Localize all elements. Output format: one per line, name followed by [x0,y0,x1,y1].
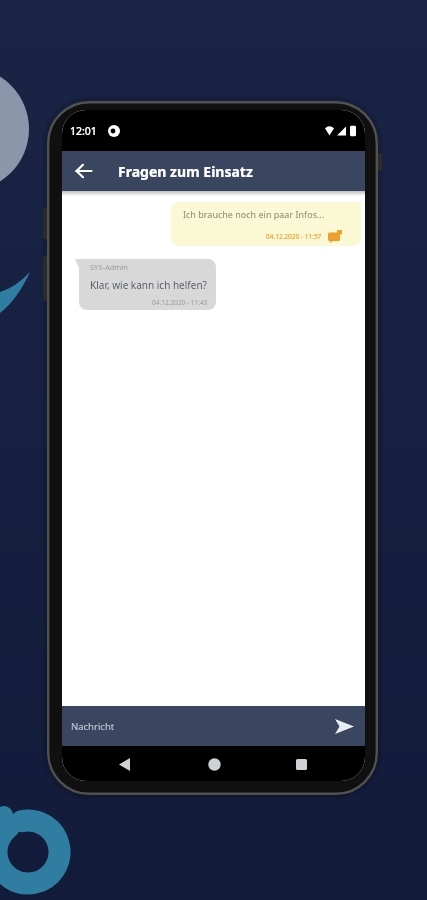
button[interactable] [287,750,315,778]
staticText: 12:01 [70,124,97,138]
staticText: SYS-Admin [90,262,128,272]
button[interactable] [110,750,138,778]
button[interactable]: SYS-Admin [79,259,216,310]
staticText: Ich brauche noch ein paar Infos... [183,208,325,220]
button[interactable]: Ich brauche noch ein paar Infos... [171,202,361,246]
button[interactable] [62,151,106,191]
staticText: Nachricht [71,720,115,733]
staticText: Klar, wie kann ich helfen? [90,278,207,292]
staticText: 04.12.2020 - 11:43 [152,298,208,307]
button[interactable] [200,750,228,778]
button[interactable]: Nachricht [62,706,365,746]
staticText: 04.12.2020 - 11:57 [266,232,322,241]
staticText: Fragen zum Einsatz [118,162,253,181]
button[interactable] [332,714,356,738]
